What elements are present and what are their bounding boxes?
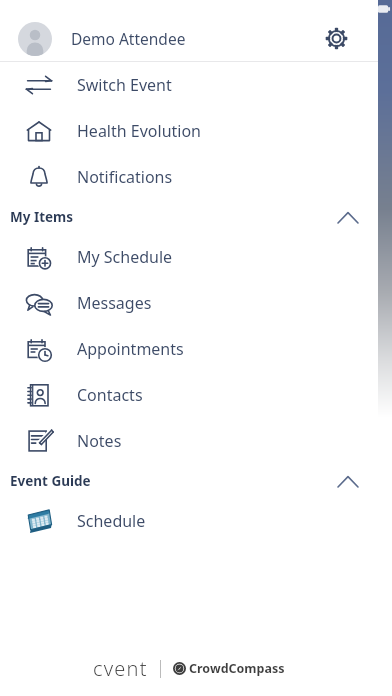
staticText: Appointments (77, 338, 184, 360)
button[interactable]: Messages (0, 280, 378, 326)
staticText: Health Evolution (77, 120, 202, 142)
other: Collapse Event Guide (328, 464, 368, 498)
button[interactable]: Demo Attendee (0, 16, 314, 61)
staticText: Demo Attendee (71, 28, 186, 49)
button[interactable]: My Schedule (0, 234, 378, 280)
button[interactable]: My Items (0, 200, 378, 234)
button[interactable]: Appointments (0, 326, 378, 372)
staticText: Event Guide (10, 472, 91, 490)
staticText: Notes (77, 430, 122, 452)
staticText: Switch Event (77, 74, 172, 96)
staticText: Notifications (77, 166, 173, 188)
button[interactable]: Settings (314, 16, 359, 61)
staticText: Messages (77, 292, 152, 314)
other: Collapse My Items (328, 200, 368, 234)
staticText: My Items (10, 208, 74, 226)
button[interactable]: Event Guide (0, 464, 378, 498)
button[interactable]: Notifications (0, 154, 378, 200)
button[interactable]: Notes (0, 418, 378, 464)
staticText: My Schedule (77, 246, 173, 268)
staticText: Schedule (77, 510, 146, 532)
staticText: CrowdCompass (189, 660, 285, 677)
button[interactable]: Schedule (0, 498, 378, 544)
button[interactable]: Contacts (0, 372, 378, 418)
button[interactable]: Health Evolution (0, 108, 378, 154)
staticText: Contacts (77, 384, 143, 406)
button[interactable]: Switch Event (0, 62, 378, 108)
staticText: cvent (93, 655, 148, 682)
